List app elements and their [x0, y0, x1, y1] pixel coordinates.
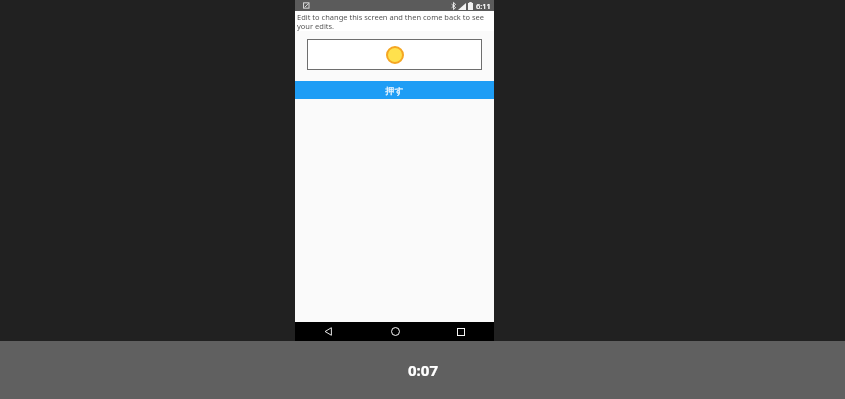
staticText: 6:11: [476, 1, 491, 11]
staticText: 0:07: [408, 360, 438, 380]
staticText: 押す: [385, 85, 404, 96]
button[interactable]: Home: [362, 322, 428, 341]
button[interactable]: Back: [295, 322, 362, 341]
staticText: Edit to change this screen and then come…: [297, 12, 492, 31]
button[interactable]: Recent apps: [428, 322, 494, 341]
button[interactable]: [307, 39, 482, 70]
button[interactable]: 押す: [295, 81, 494, 99]
